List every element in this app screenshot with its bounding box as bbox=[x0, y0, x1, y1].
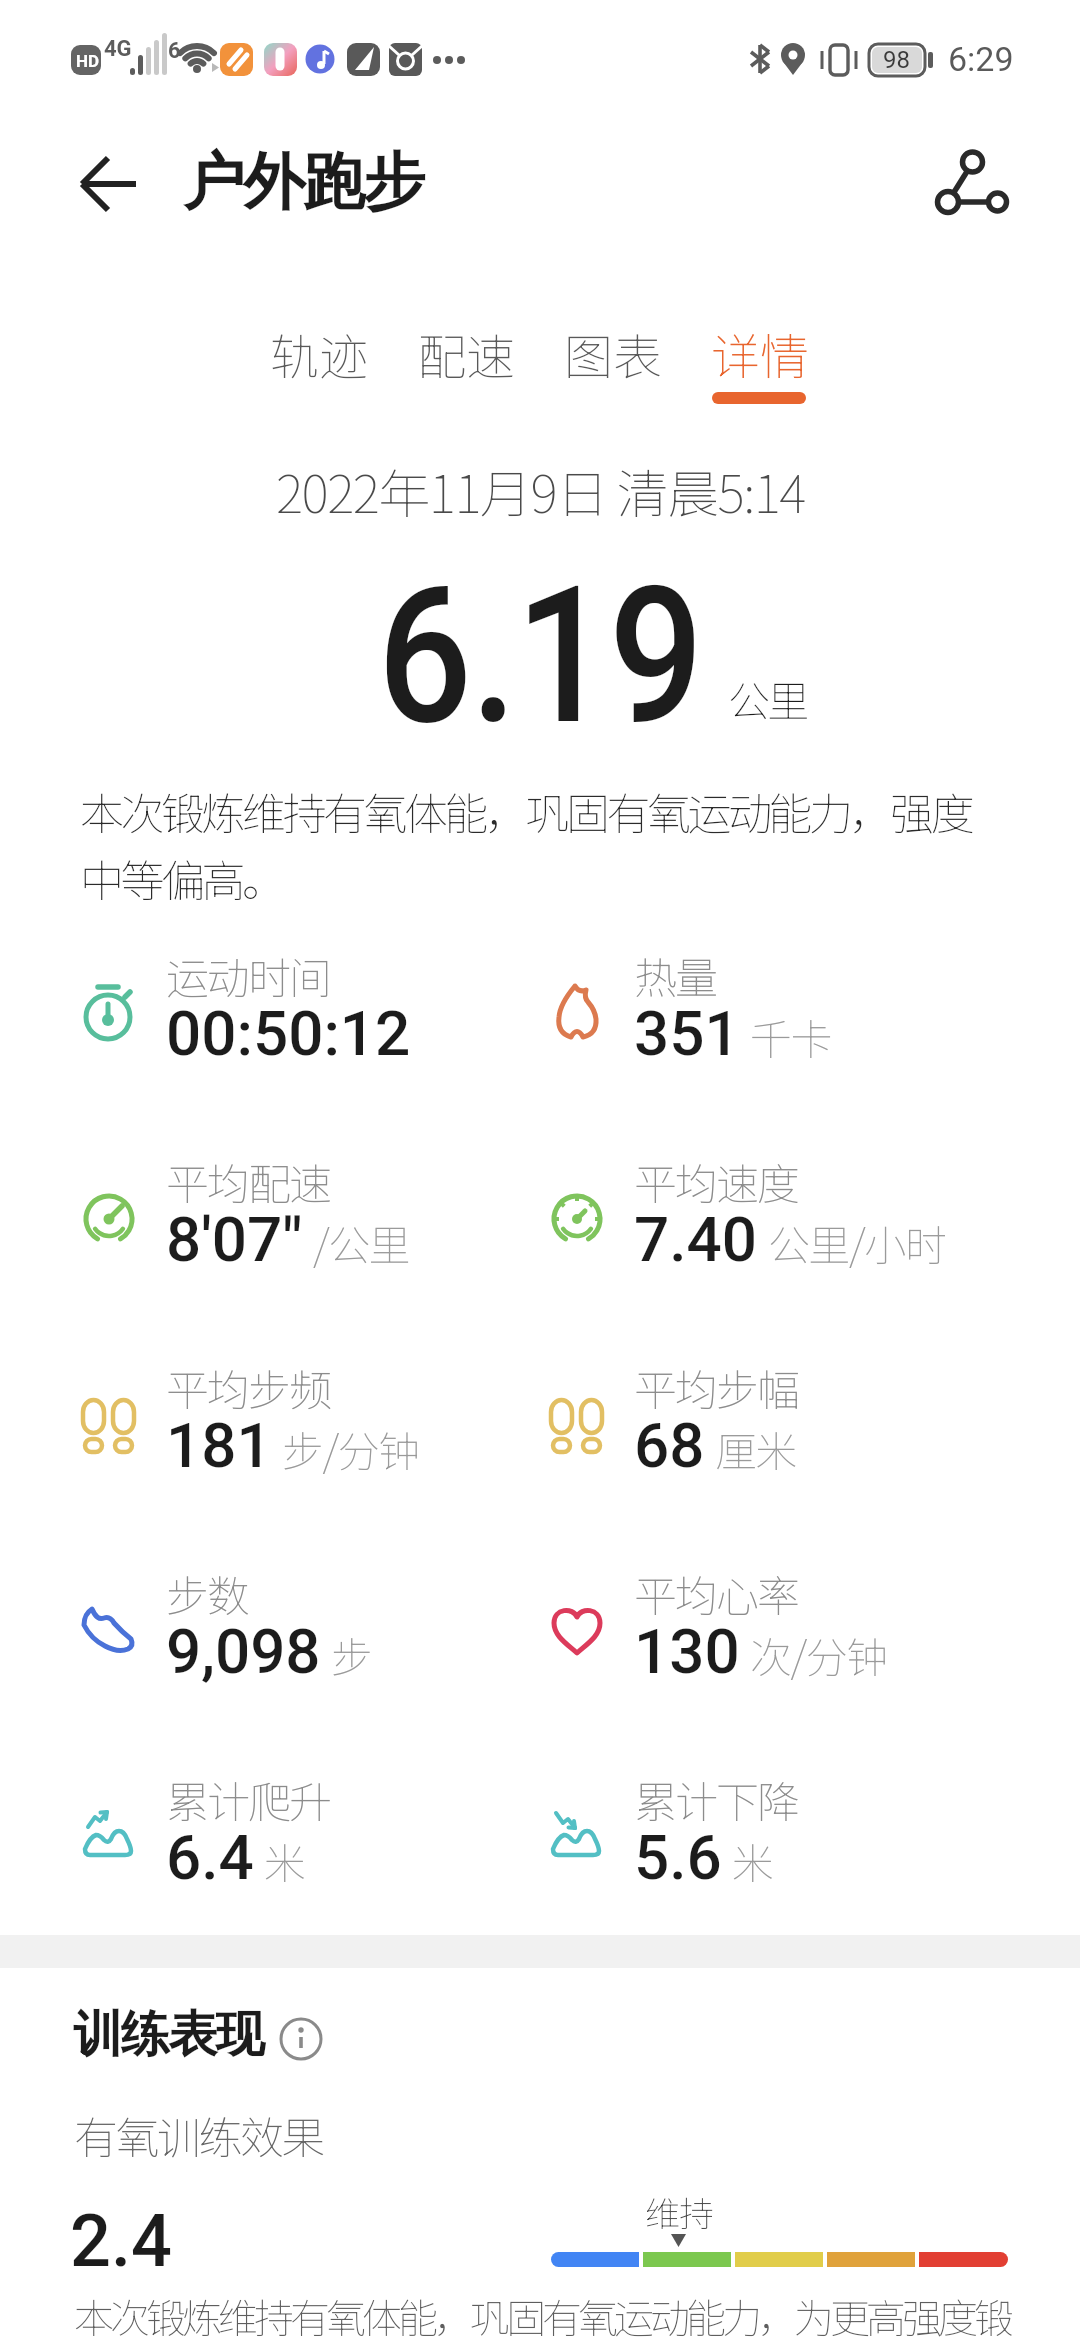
staticText: 181 bbox=[166, 1409, 272, 1482]
staticText: 图表 bbox=[564, 318, 663, 389]
button[interactable]: 详情 bbox=[711, 318, 810, 389]
staticText: 351 bbox=[634, 997, 740, 1070]
staticText: 6:29 bbox=[948, 39, 1014, 79]
button[interactable]: 平均速度 bbox=[548, 1150, 946, 1285]
staticText: 9,098 bbox=[166, 1615, 321, 1688]
staticText: 累计下降 bbox=[634, 1768, 798, 1830]
button[interactable]: 轨迹 bbox=[270, 318, 369, 389]
staticText: 轨迹 bbox=[270, 318, 369, 389]
button[interactable]: 热量 bbox=[548, 944, 832, 1079]
staticText: 本次锻炼维持有氧体能，巩固有氧运动能力，强度 中等偏高。 bbox=[80, 779, 971, 909]
staticText: 平均步频 bbox=[166, 1356, 330, 1418]
button[interactable]: 配速 bbox=[417, 318, 516, 389]
staticText: 步 bbox=[331, 1624, 372, 1685]
staticText: 户外跑步 bbox=[184, 143, 424, 221]
staticText: 热量 bbox=[634, 944, 716, 1006]
staticText: 步/分钟 bbox=[282, 1418, 419, 1479]
staticText: 6.4 bbox=[166, 1821, 254, 1894]
staticText: 平均配速 bbox=[166, 1150, 330, 1212]
staticText: HD bbox=[76, 51, 100, 71]
staticText: 详情 bbox=[711, 318, 810, 389]
staticText: 配速 bbox=[417, 318, 516, 389]
staticText: 8'07" bbox=[166, 1203, 303, 1276]
staticText: 5.6 bbox=[634, 1821, 722, 1894]
button[interactable]: 平均步频 bbox=[80, 1356, 419, 1491]
button[interactable]: 平均心率 bbox=[548, 1562, 887, 1697]
staticText: 公里/小时 bbox=[768, 1212, 946, 1273]
staticText: 2.4 bbox=[70, 2199, 172, 2283]
staticText: 平均心率 bbox=[634, 1562, 798, 1624]
button[interactable]: 累计爬升 bbox=[80, 1768, 330, 1903]
button[interactable]: 运动时间 bbox=[80, 944, 411, 1079]
staticText: 6.19 bbox=[377, 545, 703, 768]
staticText: 6 bbox=[168, 38, 181, 64]
button[interactable]: 步数 bbox=[80, 1562, 372, 1697]
staticText: 训练表现 bbox=[74, 2004, 264, 2066]
staticText: 平均速度 bbox=[634, 1150, 798, 1212]
staticText: 厘米 bbox=[715, 1418, 797, 1479]
staticText: 98 bbox=[883, 46, 910, 74]
staticText: 130 bbox=[634, 1615, 740, 1688]
staticText: 累计爬升 bbox=[166, 1768, 330, 1830]
staticText: 运动时间 bbox=[166, 944, 330, 1006]
staticText: 68 bbox=[634, 1409, 705, 1482]
staticText: 有氧训练效果 bbox=[74, 2103, 323, 2167]
staticText: 7.40 bbox=[634, 1203, 758, 1276]
button[interactable]: 平均配速 bbox=[80, 1150, 410, 1285]
staticText: 00:50:12 bbox=[166, 997, 411, 1070]
button[interactable]: 累计下降 bbox=[548, 1768, 798, 1903]
button[interactable]: 图表 bbox=[564, 318, 663, 389]
staticText: 米 bbox=[264, 1830, 305, 1891]
staticText: 2022年11月9日 清晨5:14 bbox=[276, 453, 805, 528]
staticText: /公里 bbox=[313, 1212, 410, 1273]
staticText: 步数 bbox=[166, 1562, 248, 1624]
staticText: 千卡 bbox=[750, 1006, 832, 1067]
button[interactable] bbox=[60, 140, 150, 230]
staticText: 本次锻炼维持有氧体能，巩固有氧运动能力，为更高强度锻 bbox=[74, 2287, 1010, 2340]
staticText: 公里 bbox=[728, 668, 808, 729]
staticText: 米 bbox=[732, 1830, 773, 1891]
staticText: 次/分钟 bbox=[750, 1624, 887, 1685]
button[interactable]: 平均步幅 bbox=[548, 1356, 798, 1491]
staticText: 维持 bbox=[645, 2186, 714, 2237]
staticText: 4G bbox=[104, 36, 132, 62]
staticText: 平均步幅 bbox=[634, 1356, 798, 1418]
button[interactable] bbox=[279, 2017, 325, 2063]
button[interactable] bbox=[920, 135, 1020, 230]
